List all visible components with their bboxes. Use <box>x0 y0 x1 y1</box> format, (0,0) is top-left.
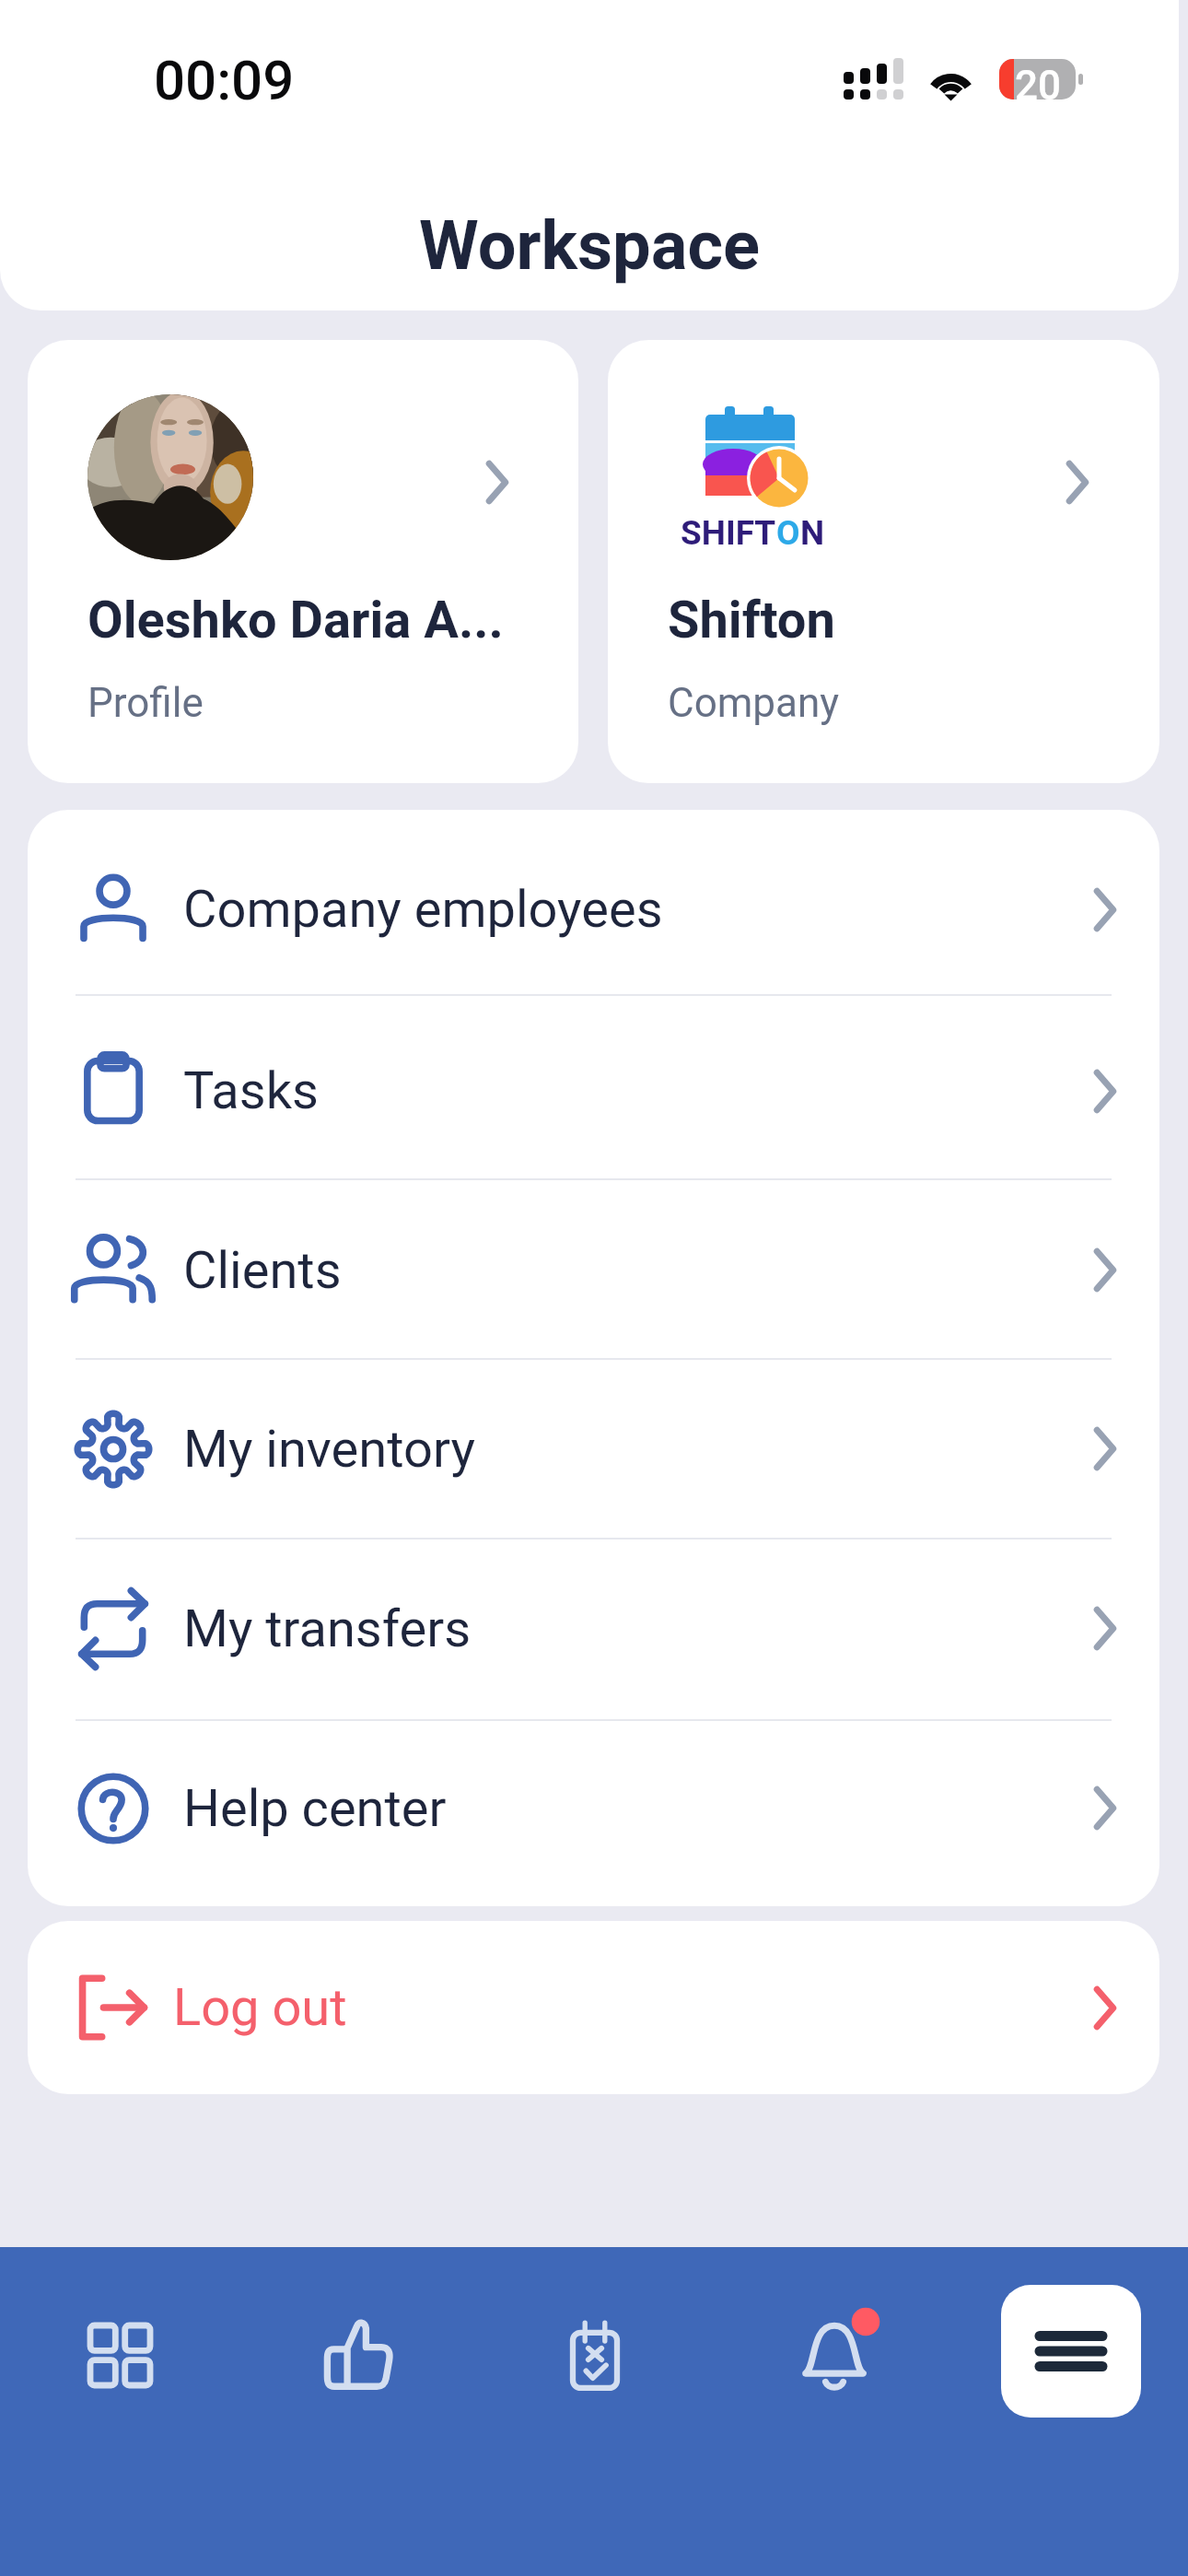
staticText: My inventory <box>183 1419 475 1480</box>
staticText: N <box>800 513 825 553</box>
button[interactable]: My transfers <box>28 1540 1159 1719</box>
staticText: Clients <box>183 1240 342 1301</box>
button[interactable]: Clients <box>28 1180 1159 1358</box>
staticText: Company <box>668 679 840 727</box>
staticText: Shifton <box>668 590 835 650</box>
staticText: Help center <box>183 1778 447 1839</box>
staticText: O <box>776 513 800 553</box>
staticText: Workspace <box>419 205 761 286</box>
button[interactable]: My inventory <box>28 1360 1159 1538</box>
staticText: Tasks <box>183 1060 319 1121</box>
button[interactable]: Tasks <box>28 996 1159 1178</box>
button[interactable]: Help center <box>28 1721 1159 1906</box>
button[interactable]: Dashboard <box>53 2289 187 2422</box>
staticText: 00:09 <box>154 48 295 112</box>
button[interactable]: Company employees <box>28 810 1159 994</box>
button[interactable]: Oleshko Daria A... <box>28 340 578 783</box>
button[interactable]: Menu <box>1001 2285 1141 2418</box>
staticText: Company employees <box>183 879 663 940</box>
button[interactable]: SHIFT <box>608 340 1159 783</box>
button[interactable]: Tasks <box>530 2283 659 2428</box>
staticText: SHIFT <box>681 513 776 553</box>
button[interactable]: Likes <box>289 2283 427 2427</box>
staticText: Oleshko Daria A... <box>87 590 504 650</box>
staticText: Profile <box>87 679 204 727</box>
button[interactable]: Log out <box>28 1921 1159 2094</box>
button[interactable]: Notifications <box>766 2285 903 2424</box>
staticText: Log out <box>173 1977 347 2038</box>
staticText: My transfers <box>183 1598 472 1659</box>
staticText: 20 <box>1015 62 1062 110</box>
